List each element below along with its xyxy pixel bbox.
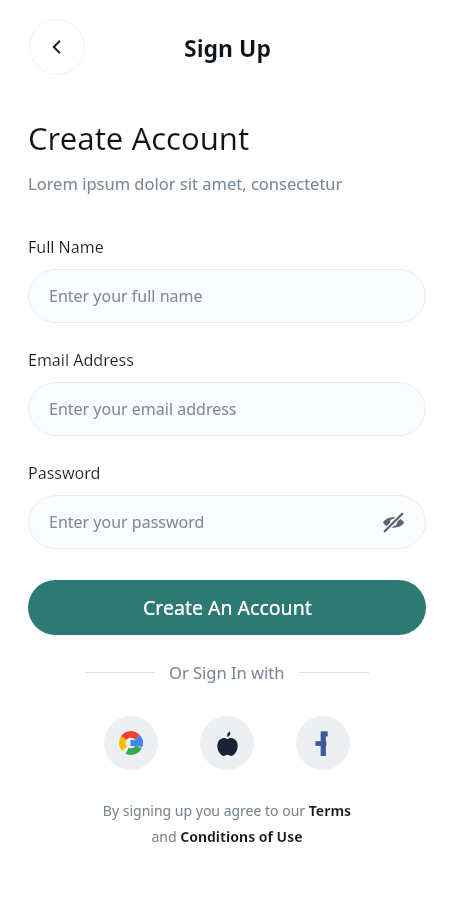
staticText: Password — [28, 462, 101, 484]
staticText: Sign Up — [184, 32, 271, 63]
staticText: Enter your full name — [49, 285, 203, 307]
staticText: Or Sign In with — [169, 661, 285, 683]
staticText: Enter your email address — [49, 398, 237, 420]
staticText: Create Account — [28, 117, 250, 159]
staticText: Enter your password — [49, 511, 205, 533]
button[interactable]: By signing up you agree to our Terms and… — [30, 801, 424, 847]
button[interactable]: Enter your email address — [28, 382, 426, 436]
button[interactable]: Enter your full name — [28, 269, 426, 323]
staticText: Lorem ipsum dolor sit amet, consectetur — [28, 172, 343, 194]
staticText: Full Name — [28, 236, 104, 258]
staticText: Create An Account — [143, 594, 312, 621]
staticText: By signing up you agree to our Terms and… — [30, 801, 424, 847]
button[interactable]: Sign in with Facebook — [296, 716, 350, 770]
button[interactable]: Back — [29, 19, 85, 75]
button[interactable]: Sign in with Apple — [200, 716, 254, 770]
staticText: Email Address — [28, 349, 134, 371]
button[interactable]: Enter your password — [28, 495, 426, 549]
button[interactable]: Create An Account — [28, 580, 426, 635]
button[interactable]: Sign in with Google — [104, 716, 158, 770]
button[interactable]: Show password — [380, 509, 406, 535]
